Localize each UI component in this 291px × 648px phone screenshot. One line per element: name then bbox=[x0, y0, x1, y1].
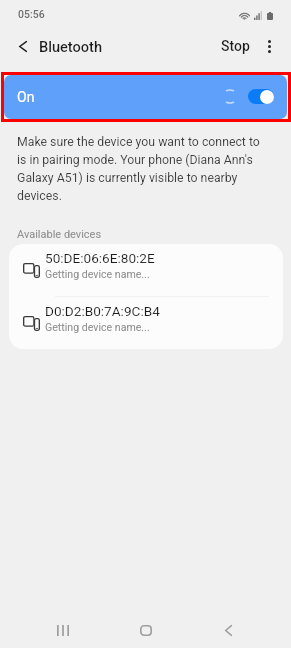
button[interactable]: Bluetooth on/off bbox=[248, 89, 274, 104]
button[interactable]: Home bbox=[126, 612, 166, 648]
button[interactable]: Back bbox=[208, 612, 248, 648]
staticText: On bbox=[17, 89, 35, 105]
staticText: Available devices bbox=[17, 228, 102, 241]
button[interactable]: 50:DE:06:6E:80:2E bbox=[9, 244, 283, 296]
staticText: Bluetooth bbox=[39, 38, 103, 55]
staticText: 05:56 bbox=[18, 8, 45, 20]
button[interactable]: D0:D2:B0:7A:9C:B4 bbox=[9, 297, 283, 349]
button[interactable]: Recent apps bbox=[43, 612, 83, 648]
staticText: D0:D2:B0:7A:9C:B4 bbox=[45, 303, 160, 319]
staticText: Getting device name... bbox=[45, 321, 150, 333]
button[interactable]: On bbox=[4, 75, 287, 119]
button[interactable]: Navigate up bbox=[3, 26, 43, 66]
staticText: Make sure the device you want to connect… bbox=[17, 135, 267, 203]
staticText: Stop bbox=[221, 38, 250, 54]
staticText: Getting device name... bbox=[45, 268, 150, 280]
staticText: 50:DE:06:6E:80:2E bbox=[45, 250, 155, 266]
button[interactable]: More options bbox=[255, 32, 283, 60]
button[interactable]: Stop bbox=[216, 30, 255, 62]
